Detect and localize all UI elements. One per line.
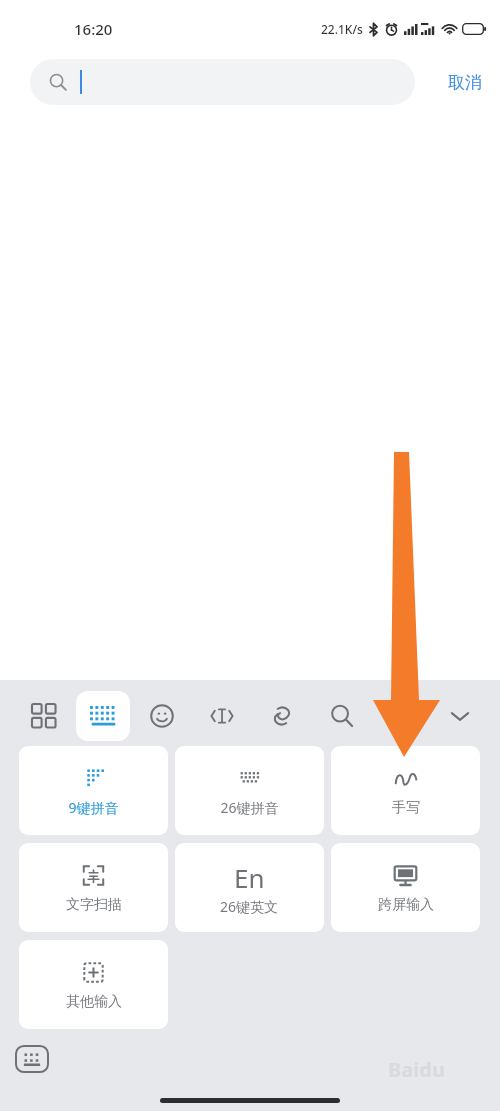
staticText: 16:20: [74, 19, 113, 39]
staticText: 手写: [392, 799, 420, 817]
button[interactable]: 文字扫描: [19, 843, 168, 932]
button[interactable]: Keyboard: [76, 691, 130, 741]
button[interactable]: Switch keyboard: [15, 1045, 49, 1073]
staticText: En: [234, 860, 265, 895]
button[interactable]: Categories: [19, 691, 69, 741]
staticText: 其他输入: [66, 993, 122, 1011]
button[interactable]: [30, 59, 415, 105]
button[interactable]: 其他输入: [19, 940, 168, 1029]
button[interactable]: Emoji: [137, 691, 187, 741]
staticText: 取消: [448, 72, 482, 93]
staticText: 文字扫描: [66, 896, 122, 914]
staticText: Baidu: [388, 1056, 445, 1083]
staticText: 22.1K/s: [321, 21, 363, 37]
button[interactable]: Text edit: [197, 691, 247, 741]
staticText: 跨屏输入: [378, 896, 434, 914]
button[interactable]: 9键拼音: [19, 746, 168, 835]
staticText: 9键拼音: [68, 798, 119, 817]
button[interactable]: 手写: [331, 746, 480, 835]
button[interactable]: En: [175, 843, 324, 932]
staticText: 26键英文: [220, 897, 279, 916]
button[interactable]: Collapse: [435, 691, 485, 741]
button[interactable]: Clipboard: [257, 691, 307, 741]
button[interactable]: 取消: [448, 72, 500, 93]
button[interactable]: 跨屏输入: [331, 843, 480, 932]
button[interactable]: Search: [317, 691, 367, 741]
staticText: 26键拼音: [220, 798, 279, 817]
button[interactable]: 26键拼音: [175, 746, 324, 835]
